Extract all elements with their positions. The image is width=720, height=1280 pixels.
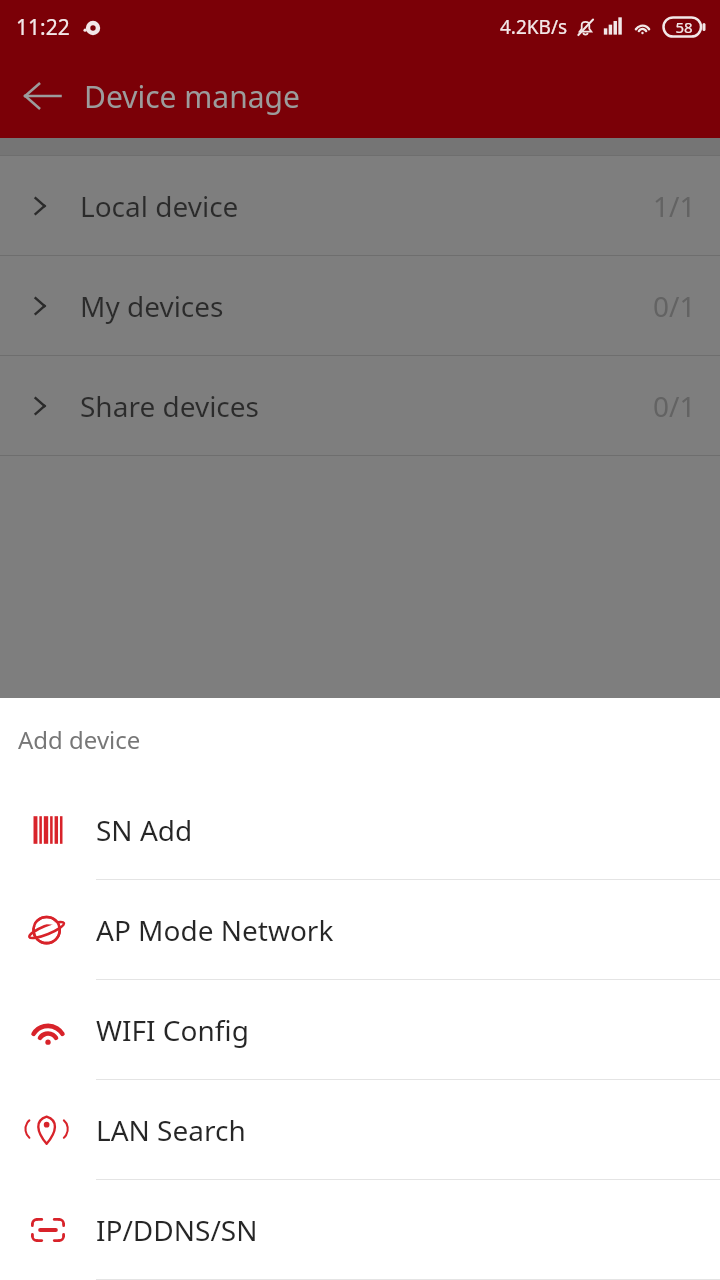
button[interactable]: IP/DDNS/SN: [0, 1180, 720, 1280]
staticText: 0/1: [653, 387, 696, 425]
button[interactable]: SN Add: [0, 780, 720, 880]
button[interactable]: Local device: [0, 156, 720, 255]
staticText: 58: [675, 17, 693, 37]
staticText: WIFI Config: [96, 1011, 249, 1049]
staticText: SN Add: [96, 811, 193, 849]
staticText: Share devices: [80, 387, 260, 425]
staticText: 0/1: [653, 287, 696, 325]
staticText: Add device: [18, 723, 141, 756]
staticText: 4.2KB/s: [500, 14, 568, 40]
staticText: Local device: [80, 187, 239, 225]
button[interactable]: My devices: [0, 256, 720, 355]
staticText: 11:22: [16, 13, 70, 42]
staticText: AP Mode Network: [96, 911, 334, 949]
button[interactable]: LAN Search: [0, 1080, 720, 1180]
button[interactable]: AP Mode Network: [0, 880, 720, 980]
staticText: IP/DDNS/SN: [96, 1211, 258, 1249]
staticText: 1/1: [653, 187, 696, 225]
staticText: LAN Search: [96, 1111, 246, 1149]
staticText: Device manage: [84, 76, 300, 117]
staticText: My devices: [80, 287, 224, 325]
button[interactable]: WIFI Config: [0, 980, 720, 1080]
button[interactable]: Back: [0, 54, 84, 138]
button[interactable]: Share devices: [0, 356, 720, 455]
